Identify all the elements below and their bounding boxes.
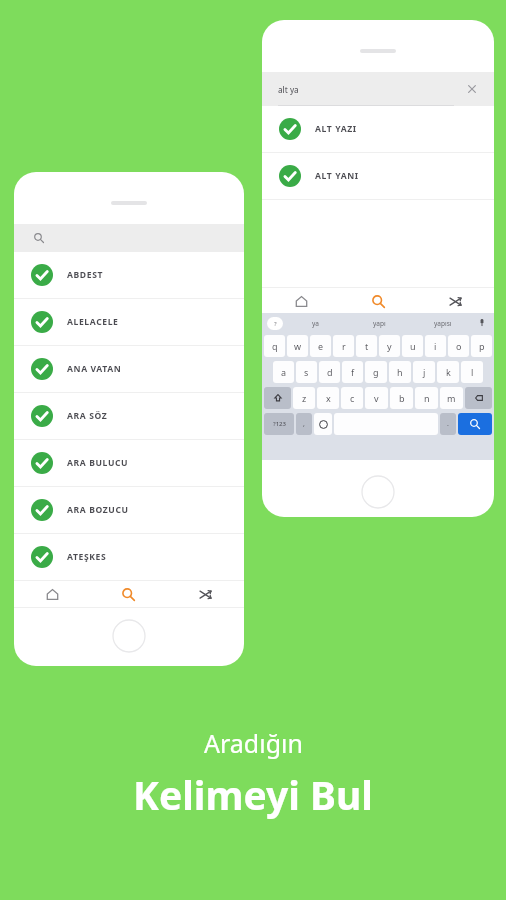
staticText: l: [471, 366, 474, 378]
button[interactable]: ?: [267, 317, 283, 330]
button[interactable]: Shift: [264, 387, 291, 409]
button[interactable]: Search: [340, 288, 417, 314]
staticText: Kelimeyi Bul: [133, 768, 373, 821]
button[interactable]: d: [319, 361, 340, 383]
staticText: ALT YAZI: [315, 123, 357, 135]
button[interactable]: Clear: [466, 83, 478, 95]
button[interactable]: Emoji: [314, 413, 332, 435]
staticText: q: [272, 340, 278, 352]
button[interactable]: a: [273, 361, 294, 383]
staticText: ,: [303, 419, 305, 429]
staticText: x: [326, 392, 331, 404]
button[interactable]: ?123: [264, 413, 294, 435]
staticText: w: [294, 340, 302, 352]
staticText: t: [365, 340, 369, 352]
button[interactable]: s: [296, 361, 317, 383]
staticText: ATEŞKES: [67, 551, 107, 563]
button[interactable]: w: [287, 335, 308, 357]
button[interactable]: ARA BULUCU: [14, 440, 244, 487]
button[interactable]: r: [333, 335, 354, 357]
staticText: ABDEST: [67, 269, 104, 281]
button[interactable]: ATEŞKES: [14, 534, 244, 581]
staticText: ARA BOZUCU: [67, 504, 129, 516]
button[interactable]: .: [440, 413, 456, 435]
button[interactable]: p: [471, 335, 492, 357]
button[interactable]: Search: [458, 413, 492, 435]
button[interactable]: e: [310, 335, 331, 357]
button[interactable]: ALT YAZI: [262, 106, 494, 153]
staticText: h: [397, 366, 403, 378]
staticText: z: [302, 392, 307, 404]
staticText: a: [281, 366, 287, 378]
staticText: g: [373, 366, 379, 378]
button[interactable]: n: [415, 387, 438, 409]
button[interactable]: Shuffle: [417, 288, 494, 314]
button[interactable]: ALELACELE: [14, 299, 244, 346]
staticText: yapısı: [434, 319, 452, 328]
button[interactable]: ARA BOZUCU: [14, 487, 244, 534]
staticText: i: [434, 340, 437, 352]
staticText: .: [447, 419, 449, 429]
button[interactable]: Home button: [112, 619, 146, 653]
button[interactable]: g: [365, 361, 387, 383]
button[interactable]: ya: [283, 313, 347, 333]
staticText: e: [318, 340, 324, 352]
button[interactable]: ,: [296, 413, 312, 435]
staticText: y: [387, 340, 392, 352]
staticText: j: [423, 366, 426, 378]
button[interactable]: f: [342, 361, 363, 383]
button[interactable]: alt ya: [262, 72, 494, 106]
staticText: Aradığın: [204, 726, 303, 760]
staticText: yapı: [373, 319, 386, 328]
staticText: c: [350, 392, 355, 404]
button[interactable]: z: [293, 387, 315, 409]
button[interactable]: Home: [14, 581, 90, 607]
staticText: ?: [274, 320, 277, 328]
staticText: o: [456, 340, 462, 352]
button[interactable]: m: [440, 387, 463, 409]
staticText: b: [399, 392, 405, 404]
button[interactable]: b: [390, 387, 413, 409]
button[interactable]: ARA SÖZ: [14, 393, 244, 440]
button[interactable]: Voice input: [475, 316, 489, 330]
button[interactable]: h: [389, 361, 411, 383]
staticText: r: [342, 340, 346, 352]
staticText: d: [327, 366, 333, 378]
button[interactable]: l: [461, 361, 483, 383]
button[interactable]: x: [317, 387, 339, 409]
button[interactable]: yapı: [347, 313, 411, 333]
button[interactable]: ALT YANI: [262, 153, 494, 200]
button[interactable]: q: [264, 335, 285, 357]
button[interactable]: ANA VATAN: [14, 346, 244, 393]
staticText: ANA VATAN: [67, 363, 122, 375]
button[interactable]: o: [448, 335, 469, 357]
button[interactable]: t: [356, 335, 377, 357]
staticText: alt ya: [278, 84, 299, 95]
staticText: s: [304, 366, 309, 378]
staticText: ?123: [273, 420, 286, 428]
button[interactable]: v: [365, 387, 388, 409]
button[interactable]: c: [341, 387, 363, 409]
button[interactable]: Search: [90, 581, 167, 607]
button[interactable]: ABDEST: [14, 252, 244, 299]
staticText: ARA SÖZ: [67, 410, 108, 422]
staticText: m: [447, 392, 456, 404]
button[interactable]: j: [413, 361, 435, 383]
button[interactable]: i: [425, 335, 446, 357]
button[interactable]: k: [437, 361, 459, 383]
button[interactable]: Home: [262, 288, 340, 314]
button[interactable]: Home button: [361, 475, 395, 509]
button[interactable]: Shuffle: [167, 581, 244, 607]
staticText: n: [424, 392, 430, 404]
button[interactable]: yapısı: [411, 313, 475, 333]
button[interactable]: y: [379, 335, 400, 357]
staticText: k: [446, 366, 451, 378]
staticText: ALELACELE: [67, 316, 119, 328]
staticText: ARA BULUCU: [67, 457, 129, 469]
button[interactable]: [14, 224, 244, 252]
button[interactable]: u: [402, 335, 423, 357]
staticText: u: [410, 340, 416, 352]
staticText: p: [479, 340, 485, 352]
button[interactable]: Backspace: [465, 387, 492, 409]
